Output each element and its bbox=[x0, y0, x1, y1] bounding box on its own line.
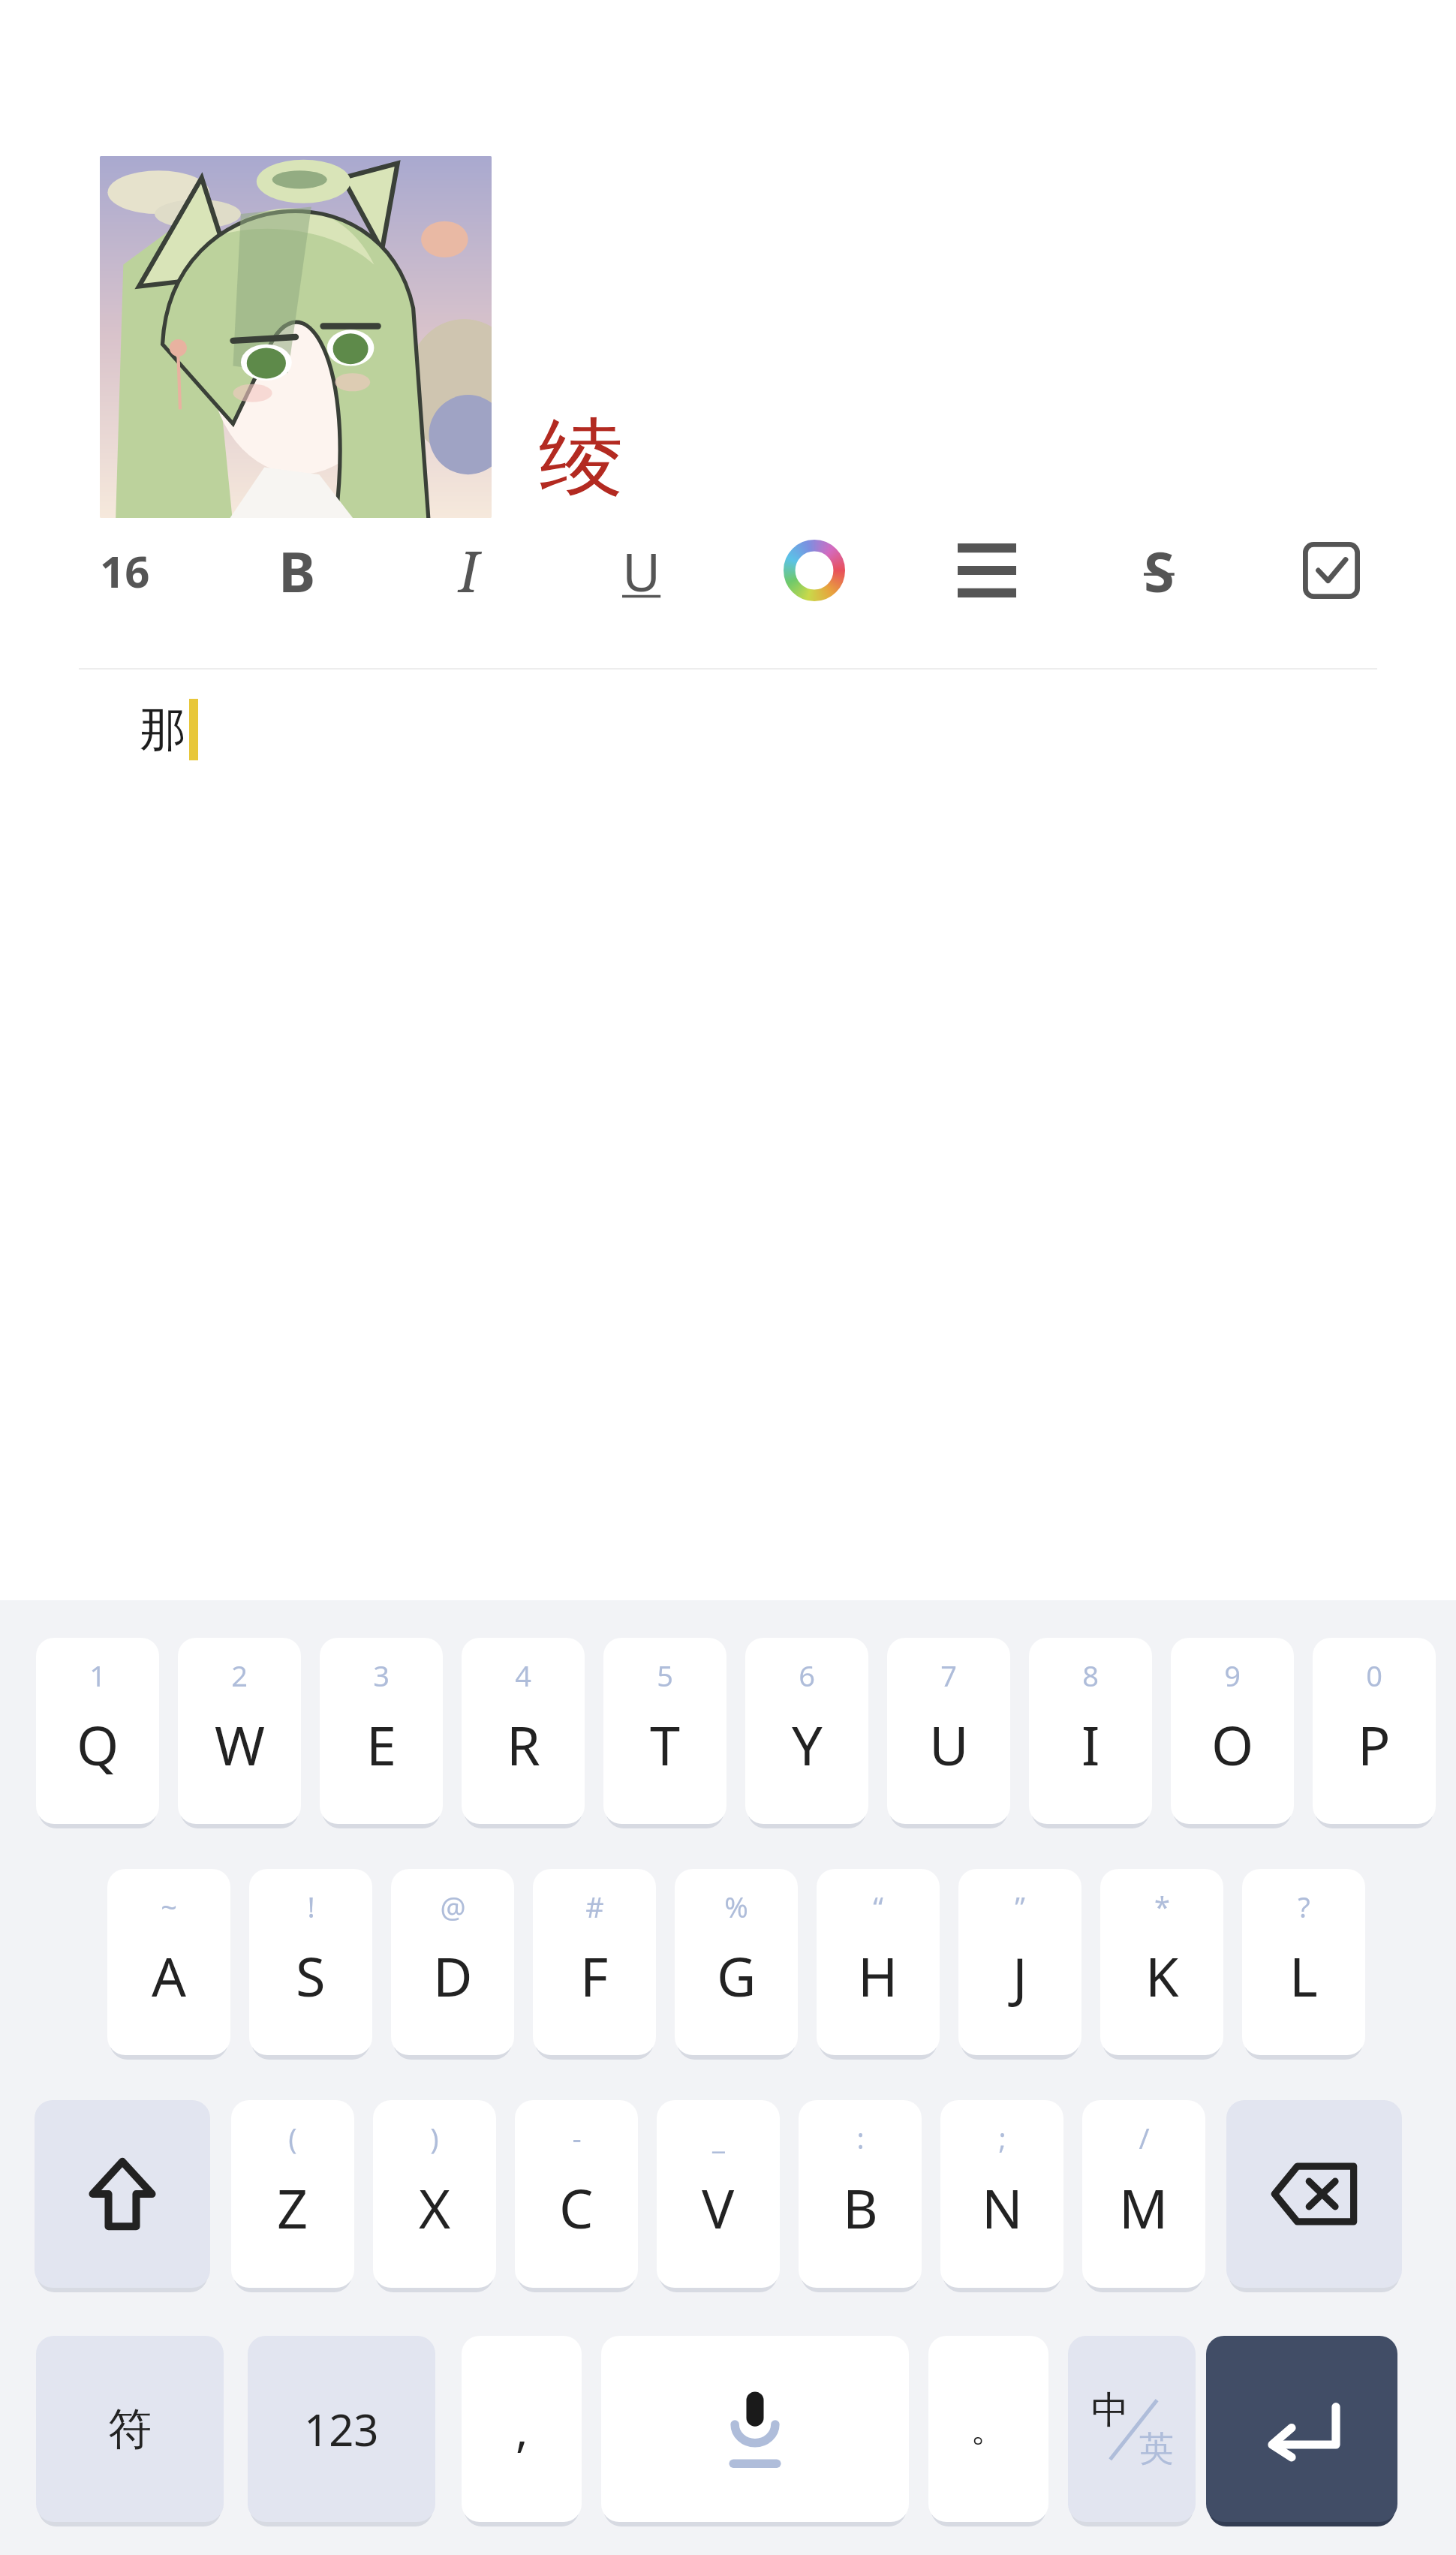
staticText: H bbox=[858, 1939, 898, 2012]
staticText: S bbox=[296, 1939, 326, 2012]
button[interactable]: Text color bbox=[762, 518, 867, 623]
staticText: 123 bbox=[304, 2400, 379, 2459]
button[interactable]: , bbox=[462, 2336, 582, 2522]
staticText: 中 bbox=[1091, 2387, 1129, 2434]
button[interactable]: ( bbox=[231, 2100, 354, 2288]
button[interactable]: 2 bbox=[178, 1638, 301, 1824]
staticText: ; bbox=[998, 2118, 1006, 2157]
button[interactable]: Checklist bbox=[1279, 518, 1384, 623]
button[interactable]: @ bbox=[391, 1869, 514, 2055]
button[interactable]: Chinese English toggle bbox=[1068, 2336, 1196, 2522]
button[interactable]: Align bbox=[934, 518, 1039, 623]
button[interactable]: 9 bbox=[1171, 1638, 1294, 1824]
staticText: A bbox=[152, 1939, 187, 2012]
staticText: 绫 bbox=[539, 405, 623, 511]
button[interactable]: * bbox=[1100, 1869, 1223, 2055]
staticText: % bbox=[724, 1887, 748, 1926]
button[interactable]: / bbox=[1082, 2100, 1205, 2288]
staticText: 3 bbox=[373, 1656, 390, 1695]
staticText: ” bbox=[1015, 1887, 1025, 1926]
button[interactable]: ~ bbox=[107, 1869, 230, 2055]
staticText: K bbox=[1145, 1939, 1179, 2012]
staticText: O bbox=[1211, 1708, 1254, 1781]
button[interactable]: Enter bbox=[1206, 2336, 1397, 2522]
staticText: ! bbox=[307, 1887, 315, 1926]
button[interactable]: 。 bbox=[928, 2336, 1048, 2522]
staticText: “ bbox=[873, 1887, 883, 1926]
button[interactable]: 4 bbox=[462, 1638, 585, 1824]
staticText: 6 bbox=[799, 1656, 815, 1695]
staticText: 英 bbox=[1139, 2427, 1174, 2471]
button[interactable]: 123 bbox=[248, 2336, 435, 2522]
staticText: W bbox=[215, 1708, 265, 1781]
button[interactable]: ! bbox=[249, 1869, 372, 2055]
staticText: 8 bbox=[1082, 1656, 1099, 1695]
button[interactable]: _ bbox=[657, 2100, 780, 2288]
button[interactable]: % bbox=[675, 1869, 798, 2055]
staticText: G bbox=[717, 1939, 757, 2012]
button[interactable]: 0 bbox=[1313, 1638, 1436, 1824]
staticText: J bbox=[1012, 1939, 1027, 2012]
staticText: L bbox=[1289, 1939, 1318, 2012]
button[interactable]: Underline bbox=[589, 518, 694, 623]
staticText: : bbox=[856, 2118, 865, 2157]
staticText: X bbox=[419, 2171, 451, 2244]
button[interactable]: Bold bbox=[245, 518, 350, 623]
button[interactable]: 3 bbox=[320, 1638, 443, 1824]
button[interactable]: : bbox=[799, 2100, 922, 2288]
staticText: 7 bbox=[940, 1656, 957, 1695]
staticText: @ bbox=[440, 1887, 466, 1926]
button[interactable]: - bbox=[515, 2100, 638, 2288]
staticText: 9 bbox=[1224, 1656, 1241, 1695]
staticText: 符 bbox=[108, 2402, 152, 2457]
staticText: 16 bbox=[100, 541, 150, 600]
button[interactable]: Voice input bbox=[601, 2336, 909, 2522]
button[interactable]: 符 bbox=[36, 2336, 224, 2522]
staticText: Q bbox=[77, 1708, 119, 1781]
button[interactable]: Backspace bbox=[1226, 2100, 1402, 2288]
button[interactable]: 6 bbox=[745, 1638, 868, 1824]
staticText: _ bbox=[712, 2118, 725, 2157]
staticText: B bbox=[278, 533, 316, 609]
button[interactable]: 8 bbox=[1029, 1638, 1152, 1824]
staticText: # bbox=[585, 1887, 604, 1926]
button[interactable]: # bbox=[533, 1869, 656, 2055]
staticText: - bbox=[572, 2118, 582, 2157]
button[interactable]: Italic bbox=[417, 518, 522, 623]
staticText: M bbox=[1119, 2171, 1169, 2244]
button[interactable]: Font size bbox=[72, 518, 177, 623]
button[interactable]: Shift bbox=[35, 2100, 210, 2288]
button[interactable] bbox=[100, 156, 492, 518]
staticText: T bbox=[650, 1708, 681, 1781]
staticText: * bbox=[1154, 1887, 1170, 1926]
button[interactable]: 1 bbox=[36, 1638, 159, 1824]
staticText: D bbox=[433, 1939, 473, 2012]
staticText: ~ bbox=[161, 1887, 177, 1926]
button[interactable]: ; bbox=[940, 2100, 1063, 2288]
button[interactable]: ? bbox=[1242, 1869, 1365, 2055]
button[interactable]: 7 bbox=[887, 1638, 1010, 1824]
button[interactable]: ” bbox=[958, 1869, 1081, 2055]
staticText: 1 bbox=[89, 1656, 106, 1695]
staticText: P bbox=[1358, 1708, 1391, 1781]
staticText: ) bbox=[430, 2118, 439, 2157]
staticText: B bbox=[843, 2171, 878, 2244]
button[interactable]: “ bbox=[817, 1869, 940, 2055]
staticText: 5 bbox=[657, 1656, 673, 1695]
staticText: 4 bbox=[515, 1656, 531, 1695]
button[interactable]: ) bbox=[373, 2100, 496, 2288]
staticText: Z bbox=[277, 2171, 308, 2244]
staticText: , bbox=[516, 2397, 528, 2460]
staticText: V bbox=[702, 2171, 735, 2244]
button[interactable]: 5 bbox=[603, 1638, 726, 1824]
staticText: 。 bbox=[970, 2406, 1006, 2451]
staticText: E bbox=[366, 1708, 397, 1781]
staticText: N bbox=[982, 2171, 1023, 2244]
staticText: / bbox=[1139, 2118, 1150, 2157]
staticText: ? bbox=[1298, 1887, 1310, 1926]
staticText: C bbox=[559, 2171, 594, 2244]
staticText: ( bbox=[288, 2118, 297, 2157]
staticText: F bbox=[580, 1939, 609, 2012]
button[interactable]: Strikethrough bbox=[1106, 518, 1211, 623]
staticText: U bbox=[929, 1708, 969, 1781]
